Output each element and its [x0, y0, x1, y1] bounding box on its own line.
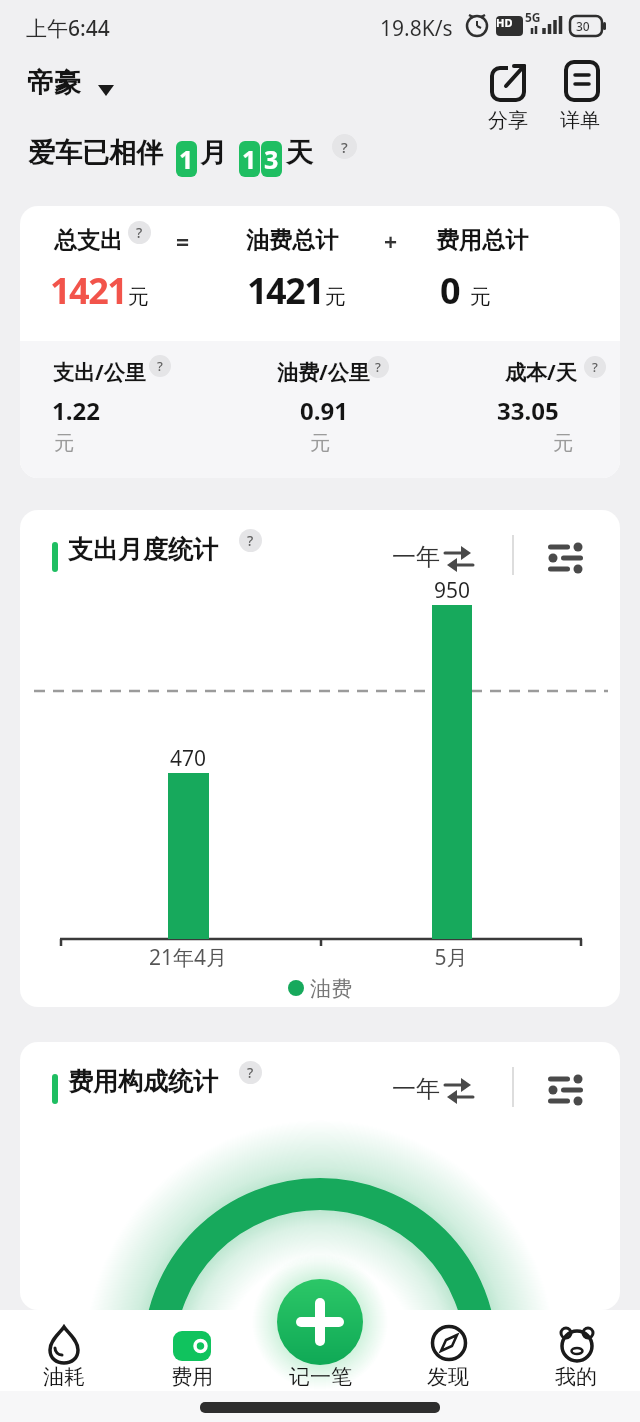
button[interactable] [548, 543, 584, 573]
staticText: 1421 [247, 266, 324, 315]
button[interactable] [24, 62, 124, 106]
staticText: 上午6:44 [26, 14, 110, 43]
button[interactable]: ? [584, 356, 606, 378]
button[interactable]: ? [239, 529, 262, 552]
staticText: 21年4月 [146, 943, 230, 972]
staticText: 分享 [488, 108, 528, 133]
staticText: 月 [200, 136, 227, 170]
staticText: 油费/公里 [277, 358, 370, 387]
staticText: 详单 [560, 108, 600, 133]
staticText: 0.91 [300, 394, 348, 427]
staticText: 元 [553, 431, 573, 456]
button[interactable] [443, 546, 475, 572]
staticText: 元 [470, 284, 491, 310]
staticText: 费用 [171, 1364, 213, 1390]
staticText: 5月 [409, 943, 493, 972]
staticText: ? [592, 358, 598, 376]
staticText: ? [247, 531, 254, 550]
staticText: 油耗 [43, 1364, 85, 1390]
button[interactable] [536, 1315, 616, 1387]
staticText: 1421 [50, 266, 127, 315]
button[interactable] [443, 1078, 475, 1104]
staticText: + [384, 226, 398, 257]
staticText: 爱车已相伴 [28, 136, 163, 170]
staticText: 0 [440, 266, 461, 315]
button[interactable] [408, 1315, 488, 1387]
staticText: 33.05 [497, 394, 559, 427]
button[interactable]: ? [332, 134, 357, 159]
staticText: ? [136, 223, 143, 242]
button[interactable] [556, 58, 612, 136]
staticText: 总支出 [54, 226, 123, 255]
button[interactable] [548, 1075, 584, 1105]
staticText: 元 [310, 431, 330, 456]
button[interactable]: ? [367, 356, 389, 378]
button[interactable] [480, 58, 536, 136]
staticText: 记一笔 [289, 1364, 352, 1390]
staticText: 1 [242, 142, 257, 176]
staticText: 950 [410, 576, 494, 605]
staticText: 支出/公里 [53, 358, 146, 387]
staticText: 19.8K/s [380, 14, 453, 43]
staticText: 油费 [310, 976, 352, 1002]
staticText: 元 [54, 431, 74, 456]
button[interactable] [277, 1279, 363, 1365]
staticText: 5G [525, 9, 541, 25]
staticText: HD [496, 15, 513, 30]
button[interactable]: ? [239, 1061, 262, 1084]
staticText: 30 [576, 18, 590, 34]
staticText: ? [157, 357, 163, 375]
staticText: 油费总计 [246, 226, 338, 255]
staticText: 3 [264, 142, 279, 176]
staticText: 1 [179, 142, 194, 176]
staticText: 发现 [427, 1364, 469, 1390]
staticText: 帝豪 [27, 66, 81, 100]
button[interactable]: 一年 [392, 542, 440, 572]
staticText: 成本/天 [505, 358, 577, 387]
staticText: 元 [325, 284, 346, 310]
button[interactable]: 一年 [392, 1074, 440, 1104]
staticText: 我的 [555, 1364, 597, 1390]
staticText: = [176, 226, 190, 257]
staticText: 费用总计 [436, 226, 528, 255]
button[interactable] [152, 1315, 232, 1387]
button[interactable]: ? [149, 355, 171, 377]
staticText: 天 [286, 136, 313, 170]
staticText: ? [375, 358, 381, 376]
staticText: 支出月度统计 [68, 534, 218, 565]
staticText: ? [341, 137, 348, 157]
staticText: 1.22 [52, 394, 100, 427]
button[interactable] [24, 1315, 104, 1387]
button[interactable]: ? [128, 221, 151, 244]
staticText: 元 [128, 284, 149, 310]
staticText: ? [247, 1063, 254, 1082]
staticText: 470 [146, 744, 230, 773]
staticText: 费用构成统计 [68, 1066, 218, 1097]
